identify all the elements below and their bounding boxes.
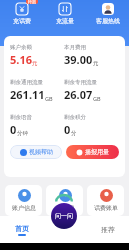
button[interactable]: [43, 216, 86, 243]
staticText: GB: [45, 95, 53, 102]
button[interactable]: 问一问: [46, 185, 83, 216]
button[interactable]: 账户余额: [10, 44, 64, 67]
staticText: 剩余语音: [10, 114, 32, 121]
staticText: 分: [71, 130, 77, 137]
staticText: 话费账单: [94, 204, 118, 212]
button[interactable]: 账户信息: [5, 185, 42, 216]
staticText: 剩余积分: [64, 114, 86, 121]
button[interactable]: 话费账单: [87, 185, 124, 216]
staticText: 账户信息: [12, 204, 36, 212]
staticText: 26.07: [64, 87, 93, 102]
button[interactable]: 剩余积分: [64, 114, 119, 137]
button[interactable]: 播报用量: [66, 145, 119, 159]
button[interactable]: 充流量: [43, 0, 86, 25]
button[interactable]: 剩余通用流量: [10, 79, 64, 102]
button[interactable]: 推荐: [86, 216, 129, 243]
staticText: 充流量: [56, 17, 74, 25]
button[interactable]: 视频帮助: [10, 145, 62, 159]
staticText: 推荐: [101, 225, 115, 234]
staticText: 本月费用: [64, 44, 86, 51]
staticText: 播报用量: [85, 148, 109, 156]
staticText: 0: [64, 122, 71, 137]
staticText: 分钟: [17, 130, 28, 137]
staticText: 问一问: [56, 204, 74, 212]
staticText: 0: [10, 122, 17, 137]
button[interactable]: 剩余语音: [10, 114, 64, 137]
staticText: 261.11: [10, 87, 45, 102]
staticText: 充话费: [13, 17, 31, 25]
button[interactable]: 问一问: [51, 203, 77, 229]
staticText: 元: [32, 60, 38, 67]
staticText: 首页: [15, 224, 29, 233]
button[interactable]: 客服热线: [86, 0, 129, 25]
button[interactable]: 首页: [0, 216, 43, 243]
button[interactable]: 本月费用: [64, 44, 119, 67]
button[interactable]: 剩余专用流量: [64, 79, 119, 102]
staticText: 特惠: [28, 0, 36, 4]
staticText: 5.16: [10, 52, 32, 67]
staticText: 账户余额: [10, 44, 32, 51]
staticText: 剩余通用流量: [10, 79, 43, 86]
staticText: 39.00: [64, 52, 93, 67]
staticText: 问一问: [55, 212, 73, 220]
staticText: 客服热线: [96, 17, 120, 25]
staticText: 视频帮助: [29, 148, 53, 156]
button[interactable]: 充话费: [0, 0, 43, 25]
staticText: GB: [93, 95, 101, 102]
staticText: 元: [93, 60, 99, 67]
staticText: 剩余专用流量: [64, 79, 97, 86]
